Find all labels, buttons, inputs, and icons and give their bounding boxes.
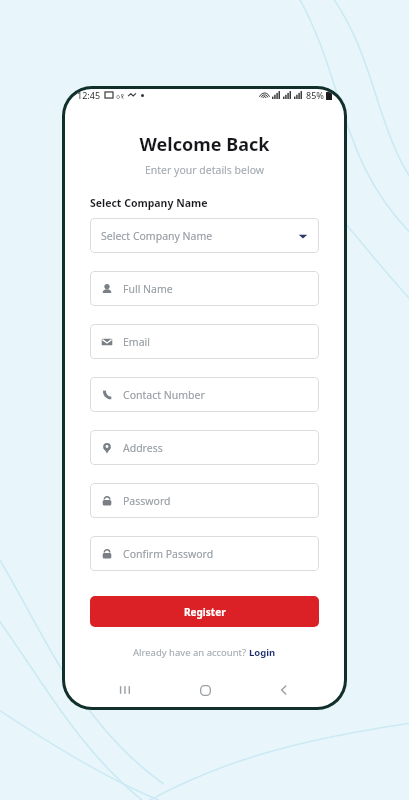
button[interactable]: Recent apps	[105, 673, 145, 707]
staticText: Email	[123, 335, 150, 349]
button[interactable]: Back	[264, 673, 304, 707]
staticText: Full Name	[123, 282, 173, 296]
staticText: Confirm Password	[123, 547, 214, 561]
button[interactable]: Register	[90, 596, 319, 627]
staticText: Password	[123, 494, 171, 508]
staticText: 85%	[306, 89, 324, 101]
staticText: 12:45	[77, 89, 101, 101]
staticText: Welcome Back	[90, 132, 319, 157]
button[interactable]: Select Company Name	[90, 218, 319, 253]
staticText: Register	[184, 605, 226, 619]
button[interactable]: Already have an account?	[131, 644, 278, 661]
staticText: Login	[249, 646, 276, 659]
button[interactable]: Full Name	[90, 271, 319, 306]
button[interactable]: Address	[90, 430, 319, 465]
staticText: Select Company Name	[101, 229, 298, 243]
staticText: Contact Number	[123, 388, 205, 402]
button[interactable]: Confirm Password	[90, 536, 319, 571]
button[interactable]: Password	[90, 483, 319, 518]
button[interactable]: Home	[185, 673, 225, 707]
staticText: Already have an account?	[133, 646, 249, 659]
staticText: Enter your details below	[90, 163, 319, 177]
staticText: Address	[123, 441, 163, 455]
button[interactable]: Email	[90, 324, 319, 359]
staticText: Select Company Name	[90, 196, 319, 210]
button[interactable]: Contact Number	[90, 377, 319, 412]
staticText: ०१	[116, 90, 125, 101]
